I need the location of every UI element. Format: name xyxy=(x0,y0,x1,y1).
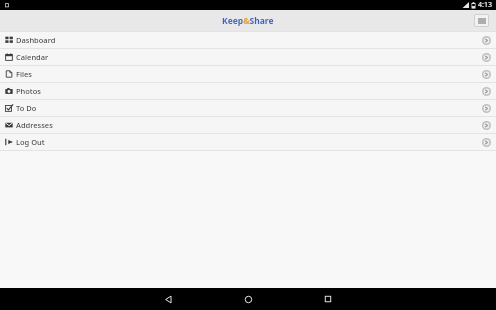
button[interactable]: Back xyxy=(128,288,208,310)
staticText: Calendar xyxy=(16,52,49,62)
staticText: Dashboard xyxy=(16,35,56,45)
button[interactable]: Dashboard xyxy=(0,32,496,48)
button[interactable]: Home xyxy=(208,288,288,310)
button[interactable]: Menu xyxy=(474,14,489,27)
staticText: To Do xyxy=(16,103,37,113)
button[interactable]: Photos xyxy=(0,83,496,99)
button[interactable]: Log Out xyxy=(0,134,496,150)
button[interactable]: Calendar xyxy=(0,49,496,65)
staticText: Files xyxy=(16,69,32,79)
button[interactable]: Recents xyxy=(288,288,368,310)
staticText: Addresses xyxy=(16,120,53,130)
staticText: Log Out xyxy=(16,137,45,147)
button[interactable]: To Do xyxy=(0,100,496,116)
staticText: Keep&Share xyxy=(222,15,274,27)
button[interactable]: Files xyxy=(0,66,496,82)
staticText: 4:13 xyxy=(478,0,492,10)
button[interactable]: Addresses xyxy=(0,117,496,133)
staticText: Photos xyxy=(16,86,41,96)
